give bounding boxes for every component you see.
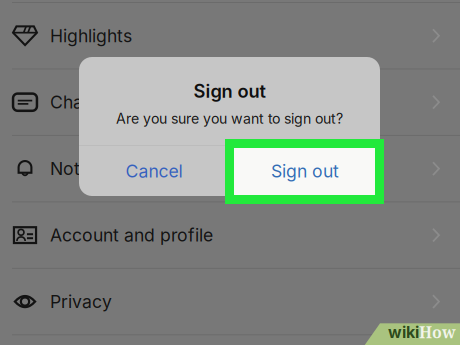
button[interactable]: Account and profile [0, 202, 460, 269]
staticText: How [419, 321, 456, 343]
button[interactable]: Chats [0, 69, 460, 136]
staticText: Notifications [50, 158, 155, 179]
staticText: Privacy [50, 291, 112, 312]
button[interactable]: Privacy [0, 269, 460, 335]
button[interactable]: Highlights [0, 3, 460, 69]
button[interactable]: Cancel [79, 146, 229, 196]
button[interactable]: Notifications [0, 136, 460, 202]
staticText: Chats [50, 91, 98, 113]
staticText: wiki [388, 322, 419, 342]
staticText: Highlights [50, 25, 132, 46]
staticText: Cancel [125, 160, 182, 182]
staticText: Account and profile [50, 224, 213, 246]
staticText: Are you sure you want to sign out? [116, 110, 343, 127]
button[interactable]: Sign out [230, 146, 380, 196]
staticText: Sign out [193, 80, 265, 102]
staticText: Sign out [271, 160, 339, 182]
